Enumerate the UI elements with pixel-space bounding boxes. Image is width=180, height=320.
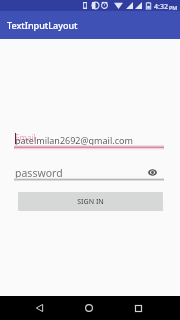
staticText: TextInputLayout [7,19,78,31]
button[interactable]: Home [83,302,95,314]
staticText: PM [169,4,178,11]
staticText: SIGN IN [77,197,104,207]
button[interactable]: Back [33,302,45,314]
button[interactable]: SIGN IN [18,192,163,211]
button[interactable]: Recents [132,302,144,314]
staticText: 4:32 [154,2,168,12]
staticText: patelmilan2692@gmail.com [15,134,133,146]
button[interactable]: Toggle password visibility [144,164,160,180]
staticText: password [15,166,63,180]
staticText: Email [15,132,36,143]
